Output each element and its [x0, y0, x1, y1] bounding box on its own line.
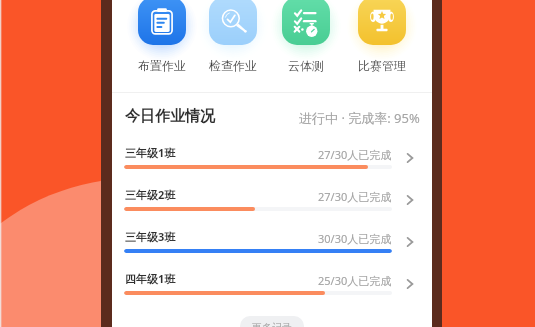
button[interactable]: 三年级1班 — [112, 144, 432, 186]
button[interactable]: 布置作业 — [138, 58, 186, 73]
button[interactable]: 更多记录 — [240, 316, 304, 327]
button[interactable]: 比赛管理 — [358, 58, 406, 73]
staticText: 检查作业 — [209, 58, 257, 73]
button[interactable]: 云体测 — [282, 0, 330, 45]
button[interactable]: 三年级2班 — [112, 186, 432, 228]
button[interactable]: 云体测 — [282, 58, 330, 73]
other: 查看 四年级1班 详情 — [404, 278, 416, 290]
staticText: 云体测 — [288, 58, 324, 73]
button[interactable]: 检查作业 — [209, 58, 257, 73]
staticText: 布置作业 — [138, 58, 186, 73]
staticText: 三年级3班 — [125, 229, 176, 244]
button[interactable]: 布置作业 — [138, 0, 186, 45]
other: 查看 三年级3班 详情 — [404, 236, 416, 248]
staticText: 更多记录 — [252, 321, 292, 327]
other: 查看 三年级1班 详情 — [404, 152, 416, 164]
staticText: 四年级1班 — [125, 271, 176, 286]
staticText: 三年级2班 — [125, 187, 176, 202]
button[interactable]: 三年级3班 — [112, 228, 432, 270]
staticText: 27/30人已完成 — [318, 189, 392, 204]
button[interactable]: 四年级1班 — [112, 270, 432, 312]
staticText: 三年级1班 — [125, 145, 176, 160]
button[interactable]: 检查作业 — [209, 0, 257, 45]
button[interactable]: 比赛管理 — [358, 0, 406, 45]
staticText: 30/30人已完成 — [318, 231, 392, 246]
staticText: 进行中 · 完成率: 95% — [299, 109, 420, 127]
staticText: 比赛管理 — [358, 58, 406, 73]
other: 查看 三年级2班 详情 — [404, 194, 416, 206]
staticText: 今日作业情况 — [125, 107, 215, 126]
staticText: 27/30人已完成 — [318, 147, 392, 162]
staticText: 25/30人已完成 — [318, 273, 392, 288]
